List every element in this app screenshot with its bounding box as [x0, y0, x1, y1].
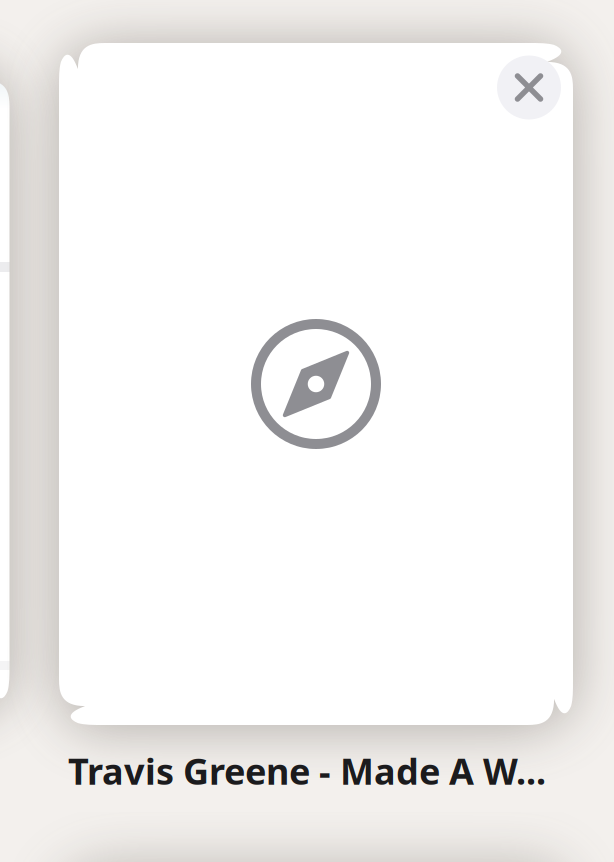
button[interactable]: Close tab — [497, 55, 561, 119]
staticText: Travis Greene - Made A W... — [68, 747, 546, 795]
button[interactable]: Previous tab — [0, 61, 9, 710]
button[interactable]: Travis Greene - Made A Way tab — [59, 43, 573, 725]
